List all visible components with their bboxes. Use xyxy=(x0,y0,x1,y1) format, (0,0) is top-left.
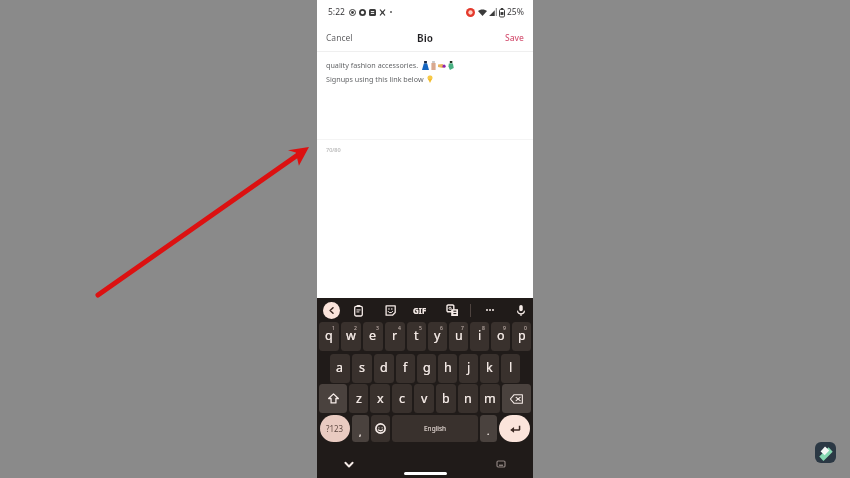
staticText: k xyxy=(486,359,493,376)
staticText: m xyxy=(484,390,496,407)
button[interactable]: Shift xyxy=(319,384,347,413)
staticText: d xyxy=(380,359,388,376)
staticText: z xyxy=(356,390,362,407)
button[interactable]: f xyxy=(396,354,415,383)
staticText: v xyxy=(421,390,428,407)
staticText: l xyxy=(509,359,513,376)
staticText: p xyxy=(518,327,526,344)
button[interactable]: c xyxy=(392,384,412,413)
staticText: t xyxy=(414,327,419,344)
button[interactable]: l xyxy=(501,354,520,383)
staticText: Cancel xyxy=(326,32,353,44)
button[interactable]: x xyxy=(370,384,390,413)
staticText: 70/80 xyxy=(326,146,341,153)
button[interactable]: Translate xyxy=(444,302,460,318)
staticText: e xyxy=(369,327,377,344)
button[interactable]: o xyxy=(491,322,510,351)
staticText: r xyxy=(392,327,398,344)
staticText: . xyxy=(487,425,490,437)
staticText: x xyxy=(377,390,384,407)
staticText: b xyxy=(442,390,450,407)
staticText: q xyxy=(325,327,333,344)
staticText: i xyxy=(478,327,482,344)
button[interactable]: s xyxy=(352,354,372,383)
button[interactable]: Backspace xyxy=(502,384,531,413)
staticText: English xyxy=(424,424,447,433)
staticText: quality fashion accessories. xyxy=(326,60,419,70)
staticText: 5:22 xyxy=(328,6,345,18)
staticText: 9 xyxy=(503,325,506,332)
staticText: 1 xyxy=(332,325,335,332)
button[interactable]: Enter xyxy=(499,415,530,442)
staticText: f xyxy=(403,359,408,376)
button[interactable]: Back xyxy=(323,302,340,319)
button[interactable]: GIF xyxy=(410,300,430,320)
button[interactable]: g xyxy=(417,354,436,383)
staticText: j xyxy=(467,359,471,376)
button[interactable]: English xyxy=(392,415,478,442)
button[interactable]: . xyxy=(480,415,497,442)
button[interactable]: y xyxy=(428,322,447,351)
staticText: 0 xyxy=(524,325,527,332)
button[interactable]: , xyxy=(352,415,369,442)
button[interactable]: Clipboard xyxy=(350,302,366,318)
staticText: 25% xyxy=(507,6,524,18)
staticText: n xyxy=(464,390,472,407)
button[interactable]: r xyxy=(385,322,405,351)
staticText: ?123 xyxy=(326,423,344,434)
button[interactable]: u xyxy=(449,322,468,351)
staticText: 7 xyxy=(461,325,464,332)
button[interactable]: h xyxy=(438,354,457,383)
button[interactable]: ?123 xyxy=(320,415,350,442)
staticText: 4 xyxy=(398,325,401,332)
button[interactable]: Save xyxy=(503,27,526,49)
staticText: h xyxy=(444,359,452,376)
staticText: Save xyxy=(505,32,524,44)
staticText: 5 xyxy=(419,325,422,332)
staticText: w xyxy=(346,327,356,344)
staticText: 2 xyxy=(354,325,357,332)
button[interactable]: w xyxy=(341,322,361,351)
button[interactable]: a xyxy=(330,354,350,383)
button[interactable]: e xyxy=(363,322,383,351)
staticText: GIF xyxy=(413,305,427,316)
staticText: 8 xyxy=(482,325,485,332)
staticText: a xyxy=(336,359,344,376)
button[interactable]: i xyxy=(470,322,489,351)
button[interactable]: v xyxy=(414,384,434,413)
button[interactable]: n xyxy=(458,384,478,413)
button[interactable]: Cancel xyxy=(324,27,355,49)
button[interactable]: More options xyxy=(480,300,500,320)
staticText: s xyxy=(359,359,365,376)
button[interactable]: p xyxy=(512,322,531,351)
button[interactable]: Switch keyboard xyxy=(493,456,509,472)
staticText: c xyxy=(399,390,406,407)
staticText: Signups using this link below xyxy=(326,74,424,84)
button[interactable]: k xyxy=(480,354,499,383)
button[interactable]: d xyxy=(374,354,394,383)
button[interactable]: Stickers xyxy=(382,302,398,318)
button[interactable]: j xyxy=(459,354,478,383)
staticText: 3 xyxy=(376,325,379,332)
staticText: o xyxy=(497,327,505,344)
staticText: g xyxy=(423,359,431,376)
staticText: , xyxy=(359,426,362,438)
button[interactable]: Hide keyboard xyxy=(341,456,357,472)
button[interactable]: m xyxy=(480,384,500,413)
button[interactable]: b xyxy=(436,384,456,413)
staticText: Bio xyxy=(417,31,433,45)
button[interactable]: Emoji xyxy=(371,415,390,442)
button[interactable]: Voice input xyxy=(513,302,529,318)
button[interactable]: z xyxy=(349,384,368,413)
staticText: u xyxy=(455,327,463,344)
button[interactable]: t xyxy=(407,322,426,351)
staticText: 6 xyxy=(440,325,443,332)
button[interactable]: q xyxy=(319,322,339,351)
staticText: y xyxy=(434,327,441,344)
